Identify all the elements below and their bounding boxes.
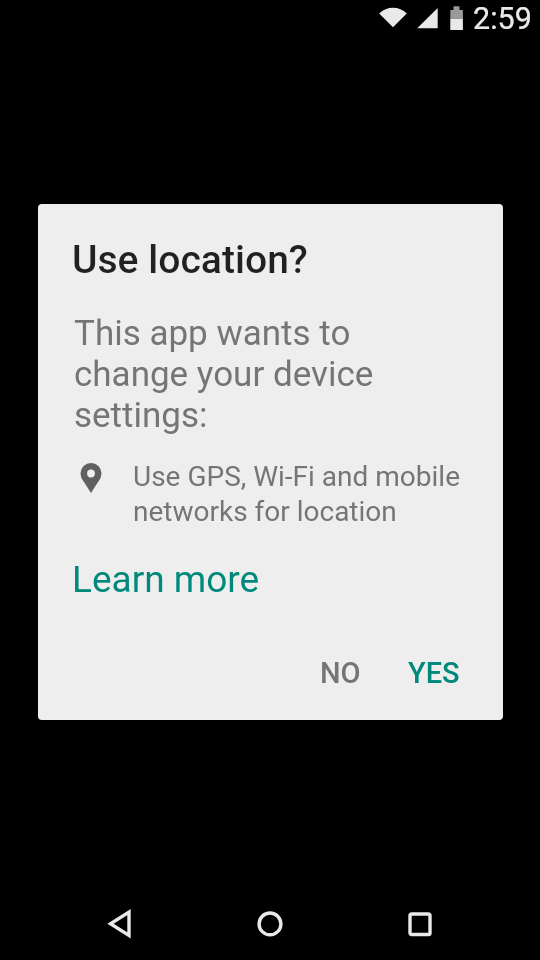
- staticText: YES: [408, 656, 460, 690]
- button[interactable]: Learn more: [38, 204, 226, 247]
- staticText: Use location?: [72, 237, 308, 283]
- staticText: 2:59: [473, 1, 532, 37]
- staticText: Use GPS, Wi-Fi and mobile networks for l…: [133, 460, 478, 528]
- button[interactable]: YES: [384, 637, 484, 709]
- button[interactable]: [210, 890, 330, 960]
- staticText: This app wants to change your device set…: [74, 313, 404, 436]
- staticText: NO: [320, 656, 361, 690]
- button[interactable]: NO: [290, 637, 390, 709]
- button[interactable]: [90, 890, 210, 960]
- button[interactable]: [330, 890, 450, 960]
